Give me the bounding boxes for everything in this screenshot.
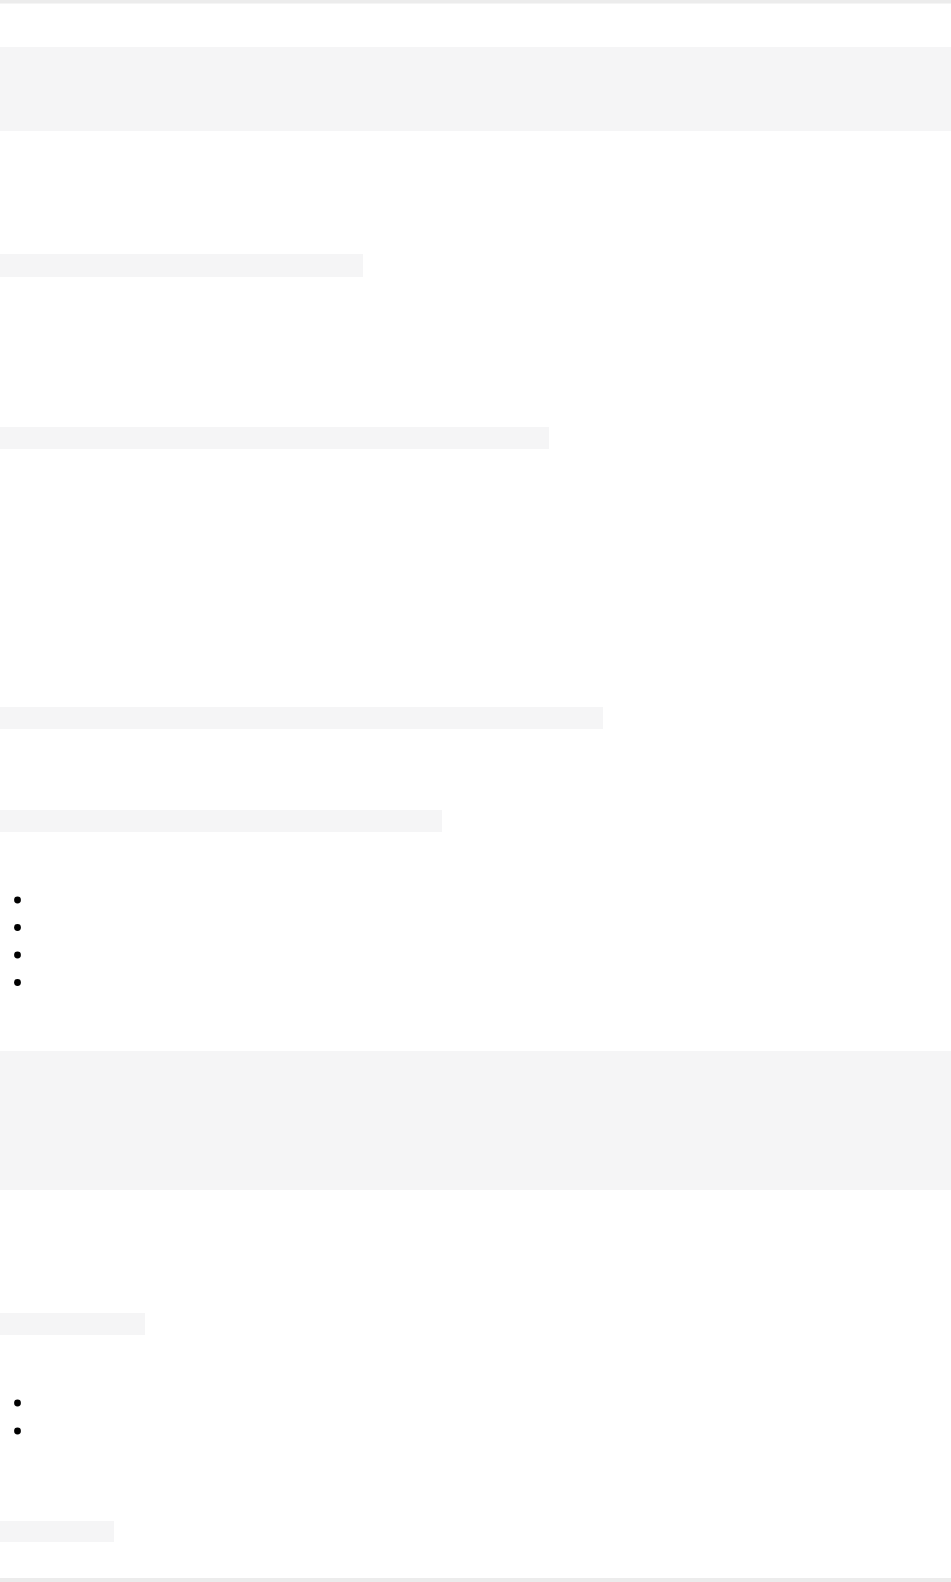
button[interactable]: Article content placeholder (0, 0, 951, 1582)
